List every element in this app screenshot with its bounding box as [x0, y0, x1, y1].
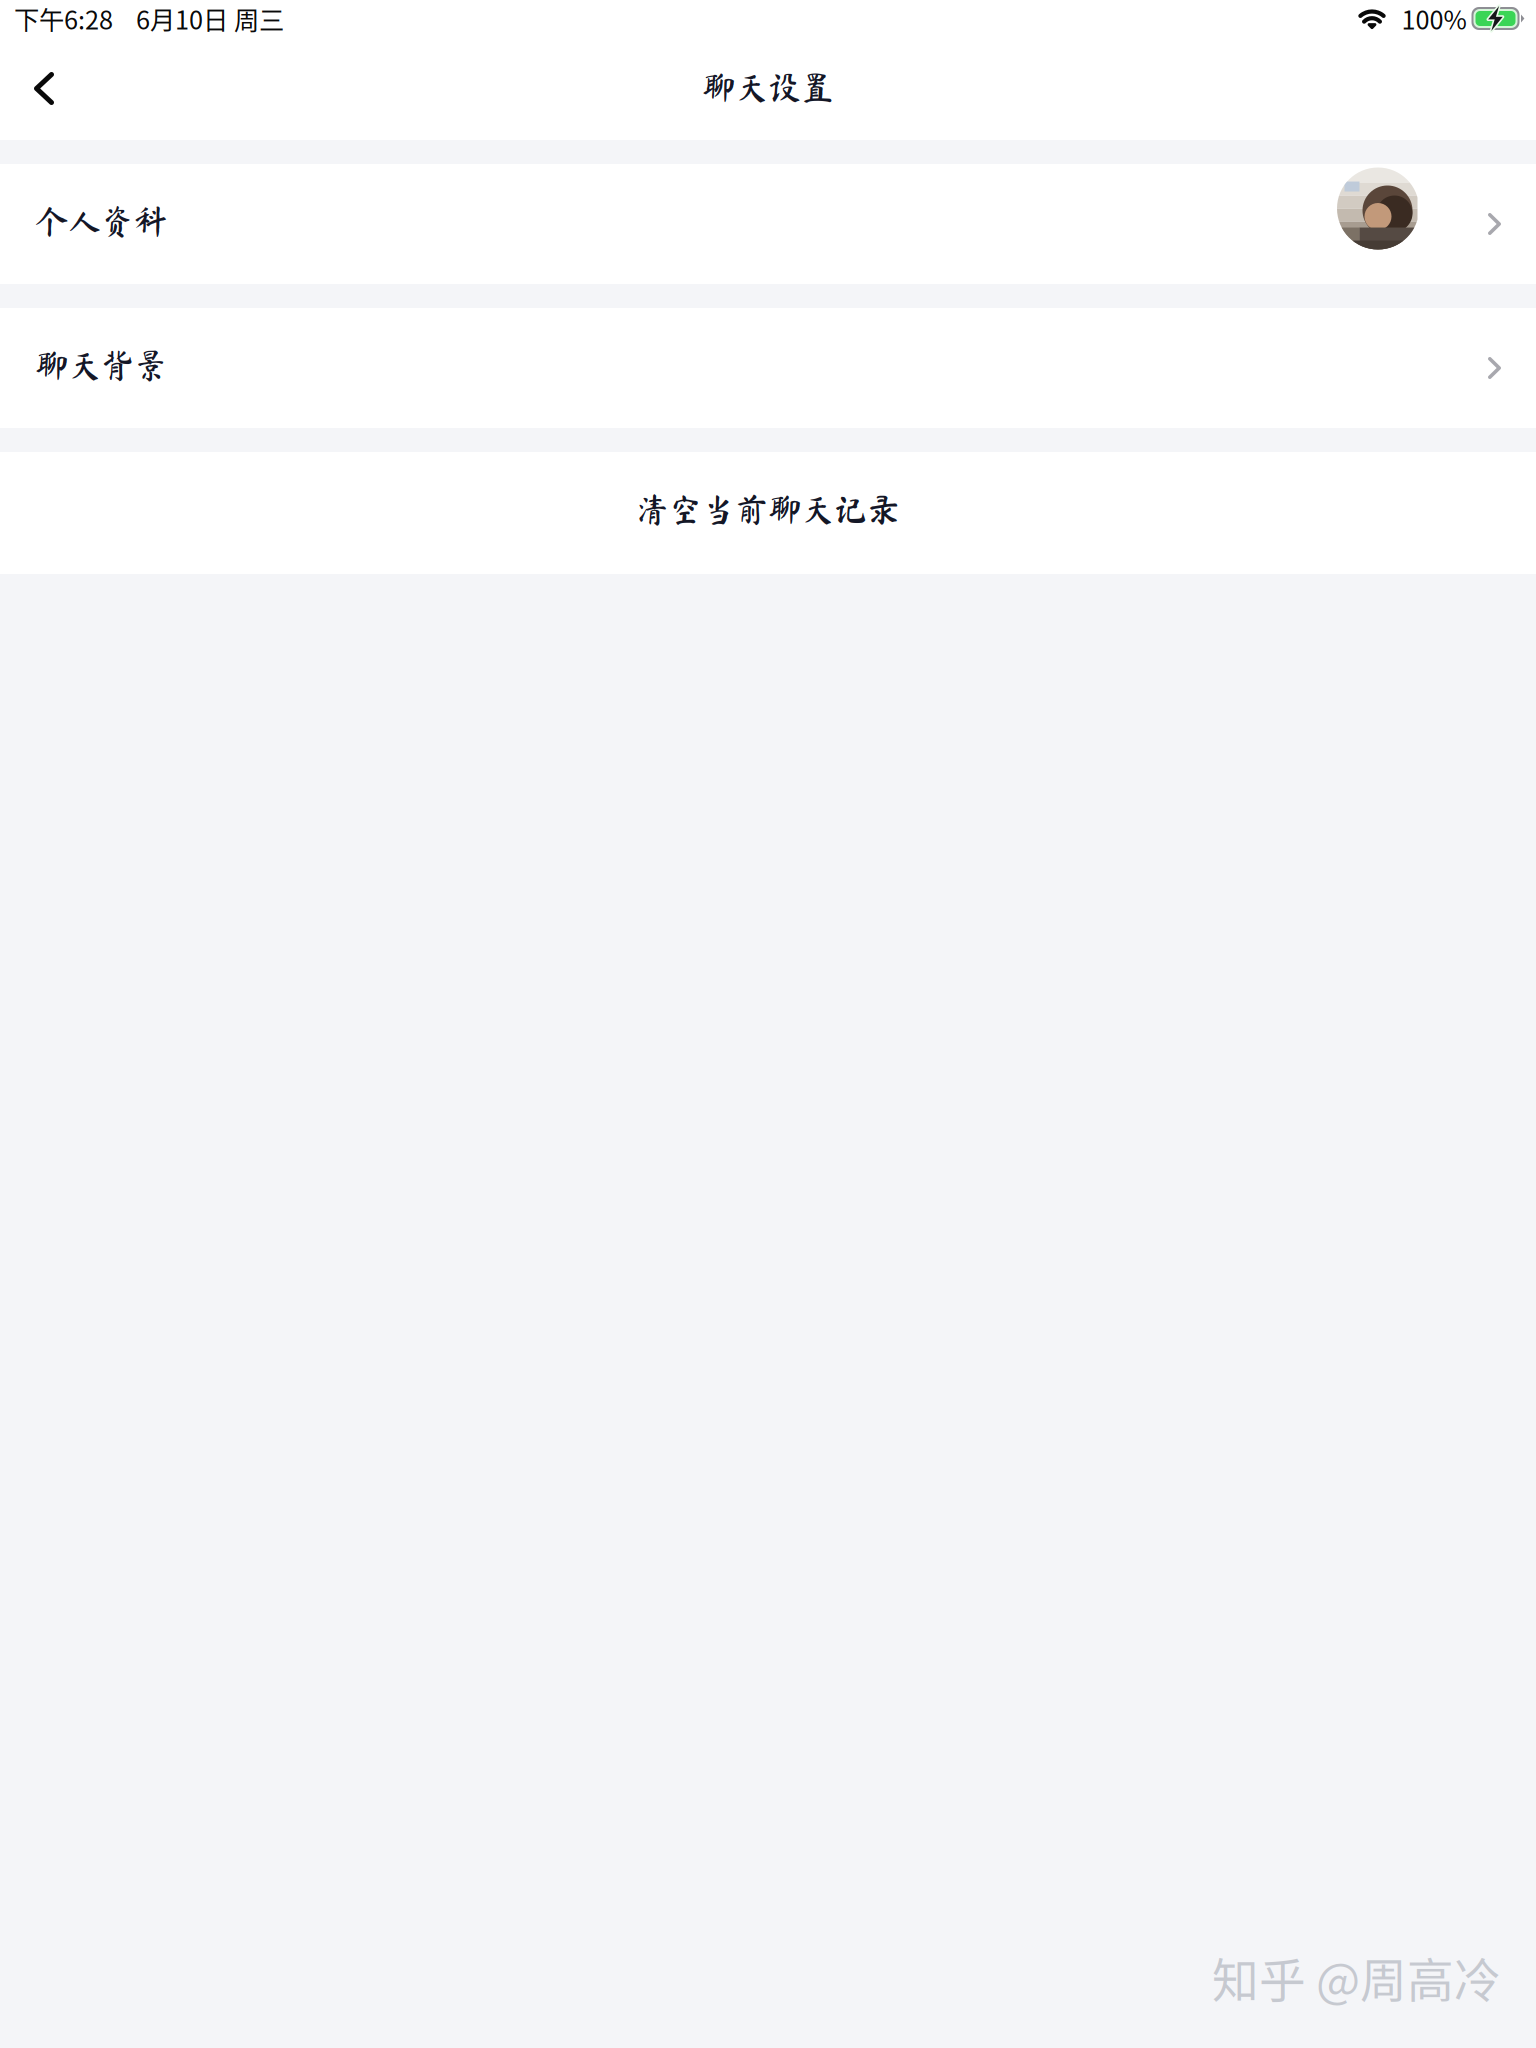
- staticText: 聊天背景: [35, 348, 167, 382]
- button[interactable]: 清空当前聊天记录: [0, 452, 1536, 574]
- staticText: 下午6:28: [14, 0, 113, 37]
- staticText: 清空当前聊天记录: [636, 492, 900, 526]
- staticText: 100%: [1401, 0, 1466, 37]
- staticText: 个人资料: [35, 204, 167, 238]
- button[interactable]: 聊天背景: [0, 308, 1536, 428]
- staticText: 知乎 @周高冷: [1212, 1943, 1501, 2011]
- button[interactable]: 个人资料: [0, 164, 1536, 284]
- staticText: 6月10日 周三: [136, 0, 284, 37]
- staticText: 聊天设置: [702, 70, 834, 104]
- button[interactable]: 返回: [8, 49, 80, 127]
